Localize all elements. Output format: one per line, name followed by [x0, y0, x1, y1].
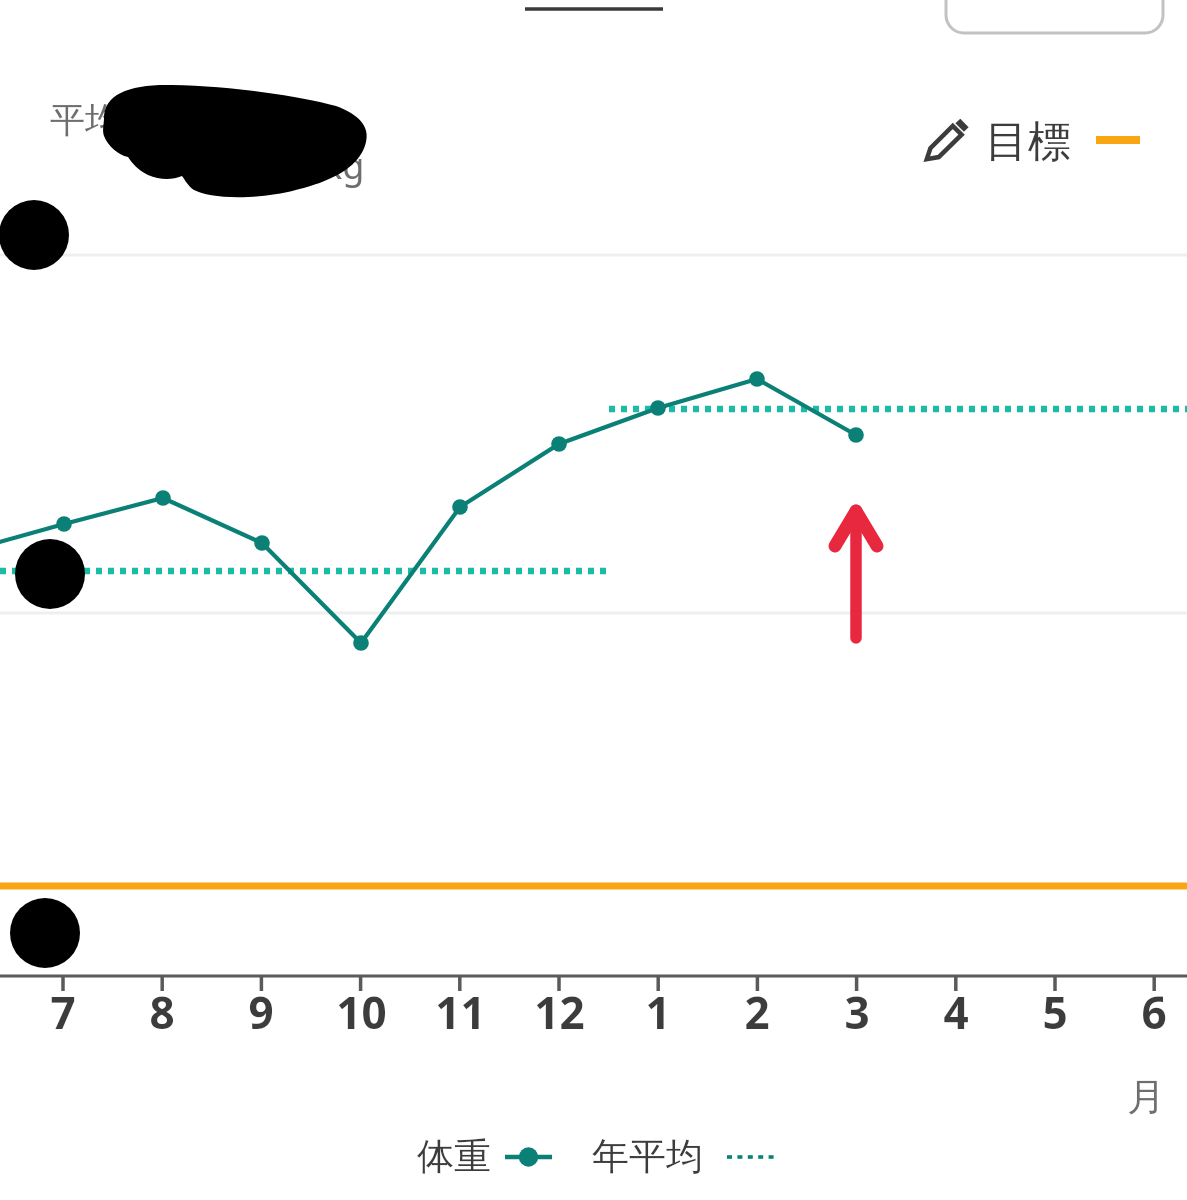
staticText: 1 — [645, 982, 671, 1042]
staticText: 月 — [1127, 1073, 1165, 1121]
staticText: 目標 — [985, 115, 1071, 169]
staticText: 2 — [744, 982, 770, 1042]
button[interactable]: Weight chart — [0, 200, 1187, 1000]
other: Edit goal — [920, 116, 972, 168]
button[interactable]: Edit goal — [920, 115, 1140, 169]
staticText: 12 — [534, 982, 585, 1042]
staticText: 体重 — [417, 1133, 491, 1180]
button[interactable]: 体重 — [0, 1133, 1187, 1180]
staticText: kg — [323, 141, 365, 190]
staticText: 8 — [149, 982, 175, 1042]
staticText: 9 — [248, 982, 274, 1042]
staticText: 年平均 — [592, 1133, 703, 1180]
staticText: 4 — [943, 982, 969, 1042]
staticText: 11 — [435, 982, 486, 1042]
staticText: 6 — [1141, 982, 1167, 1042]
staticText: 7 — [50, 982, 76, 1042]
staticText: 10 — [336, 982, 387, 1042]
staticText: 平均 — [50, 98, 120, 142]
staticText: 3 — [844, 982, 870, 1042]
staticText: 5 — [1042, 982, 1068, 1042]
